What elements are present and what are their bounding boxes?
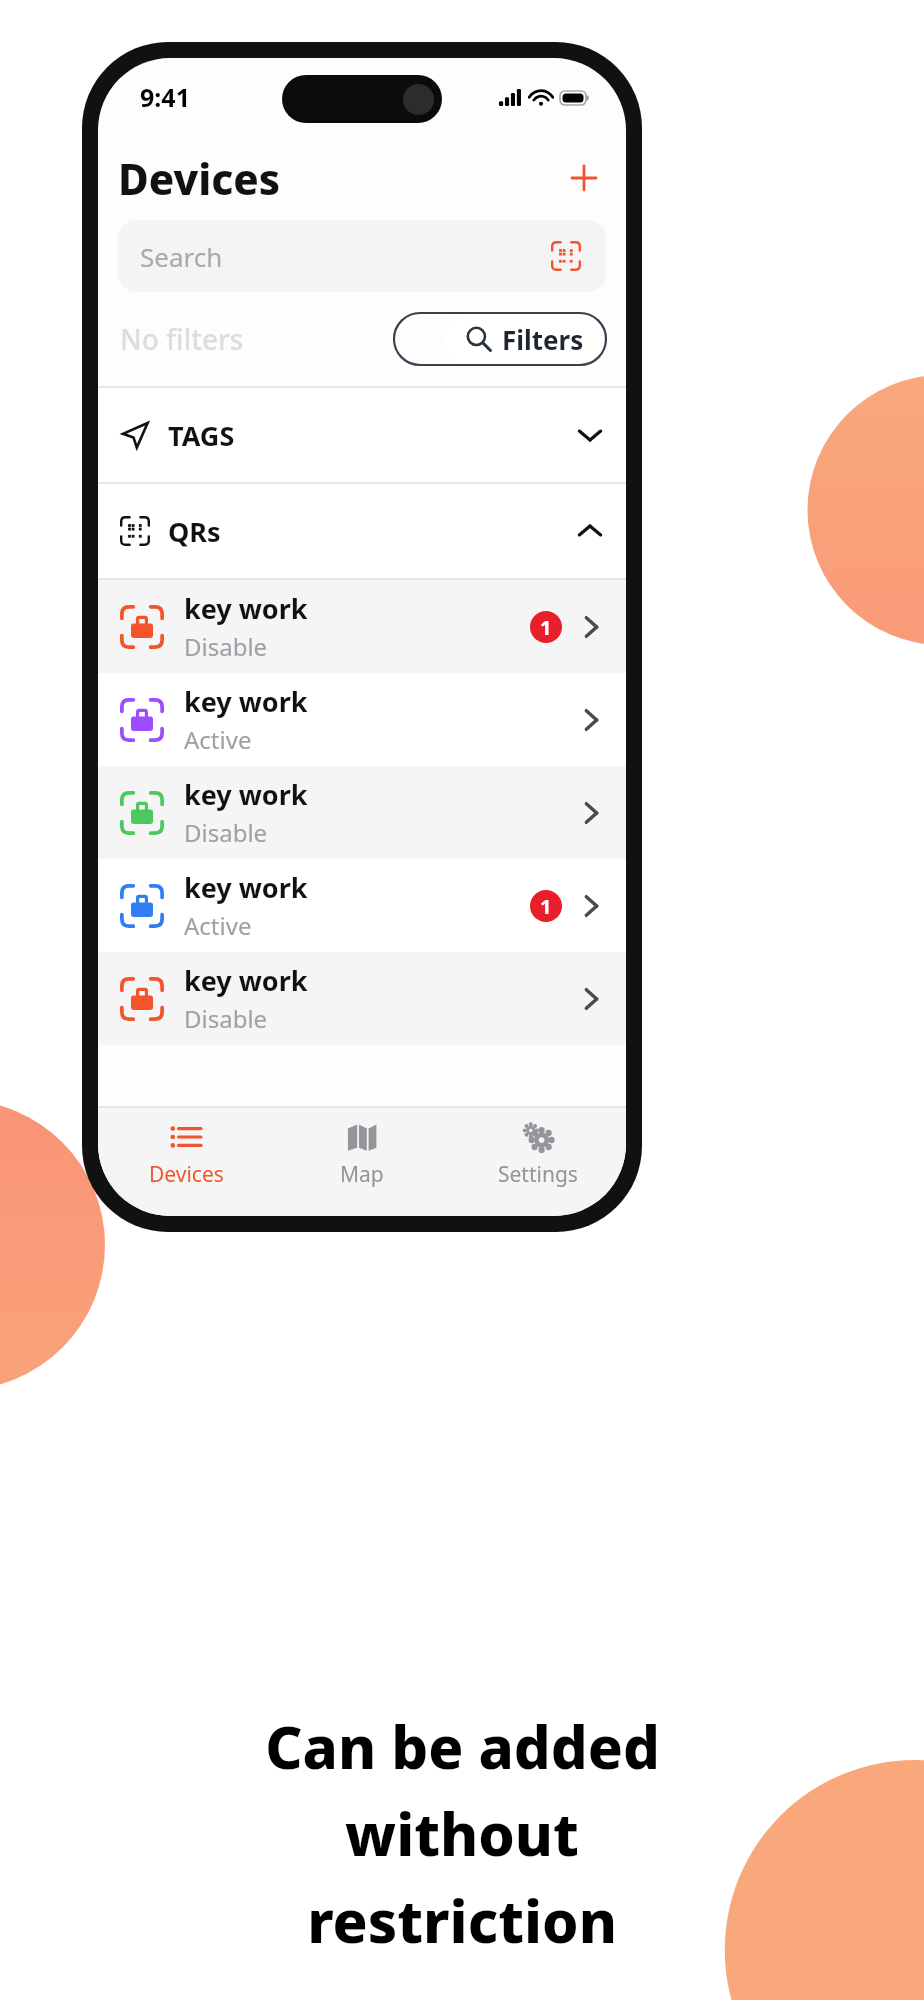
staticText: Active bbox=[184, 909, 252, 942]
button[interactable]: key work bbox=[98, 580, 626, 673]
button[interactable]: QRs bbox=[98, 484, 626, 578]
staticText: Devices bbox=[149, 1160, 224, 1189]
staticText: Map bbox=[340, 1160, 384, 1189]
staticText: Can be added bbox=[265, 1707, 660, 1786]
staticText: No filters bbox=[120, 320, 244, 358]
staticText: key work bbox=[184, 683, 308, 720]
staticText: Devices bbox=[118, 150, 281, 207]
button[interactable]: Map bbox=[274, 1108, 450, 1216]
staticText: Settings bbox=[498, 1160, 578, 1189]
staticText: Active bbox=[184, 723, 252, 756]
button[interactable]: Filters bbox=[444, 313, 606, 365]
staticText: restriction bbox=[307, 1881, 617, 1960]
staticText: without bbox=[345, 1794, 579, 1873]
button[interactable]: Scan QR bbox=[548, 238, 584, 274]
staticText: QRs bbox=[168, 513, 221, 550]
staticText: Disable bbox=[184, 816, 268, 849]
staticText: Disable bbox=[184, 630, 268, 663]
button[interactable]: key work bbox=[98, 766, 626, 859]
staticText: 1 bbox=[540, 893, 552, 920]
staticText: Filters bbox=[502, 322, 584, 357]
button[interactable]: Add device bbox=[564, 158, 604, 198]
button[interactable]: key work bbox=[98, 859, 626, 952]
staticText: TAGS bbox=[168, 417, 235, 454]
staticText: key work bbox=[184, 590, 308, 627]
staticText: Disable bbox=[184, 1002, 268, 1035]
button[interactable]: Devices bbox=[98, 1108, 274, 1216]
button[interactable]: key work bbox=[98, 952, 626, 1045]
staticText: 9:41 bbox=[140, 80, 190, 114]
staticText: key work bbox=[184, 869, 308, 906]
button[interactable]: Settings bbox=[450, 1108, 626, 1216]
button[interactable]: Search bbox=[118, 220, 606, 292]
staticText: 1 bbox=[540, 614, 552, 641]
button[interactable]: key work bbox=[98, 673, 626, 766]
staticText: key work bbox=[184, 962, 308, 999]
staticText: key work bbox=[184, 776, 308, 813]
button[interactable]: TAGS bbox=[98, 388, 626, 482]
staticText: Search bbox=[140, 239, 548, 274]
